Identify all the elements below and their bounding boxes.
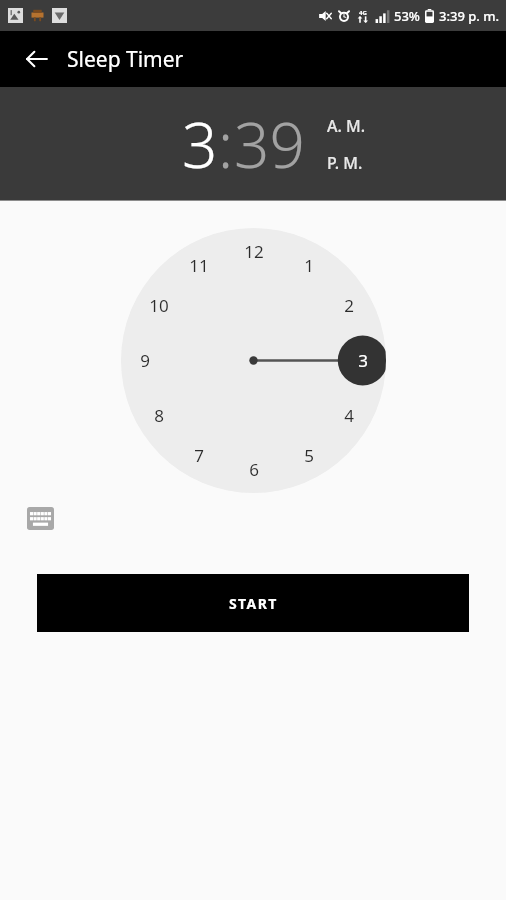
button[interactable]: Switch to text input xyxy=(25,505,55,531)
staticText: 5 xyxy=(304,444,314,467)
button[interactable]: 39 xyxy=(234,102,305,186)
staticText: A. M. xyxy=(327,115,366,137)
staticText: 3 xyxy=(358,349,368,372)
staticText: 4 xyxy=(344,404,354,427)
staticText: 8 xyxy=(154,404,164,427)
staticText: 1 xyxy=(304,254,314,277)
staticText: 53% xyxy=(394,7,420,25)
button[interactable]: Back xyxy=(13,35,61,83)
staticText: 3:39 p. m. xyxy=(439,7,500,25)
staticText: 9 xyxy=(140,349,150,372)
staticText: 7 xyxy=(194,444,204,467)
staticText: START xyxy=(229,594,278,613)
staticText: : xyxy=(218,102,234,186)
button[interactable]: 3 xyxy=(182,102,218,186)
staticText: 10 xyxy=(149,294,169,317)
button[interactable]: START xyxy=(37,574,469,632)
button[interactable]: A. M. xyxy=(325,112,368,140)
staticText: 6 xyxy=(249,458,259,481)
staticText: 11 xyxy=(189,254,209,277)
staticText: 12 xyxy=(244,240,264,263)
staticText: 2 xyxy=(344,294,354,317)
staticText: P. M. xyxy=(327,152,363,174)
staticText: Sleep Timer xyxy=(67,45,184,74)
button[interactable]: Hour picker xyxy=(121,228,386,493)
button[interactable]: P. M. xyxy=(325,149,365,177)
staticText: 4G xyxy=(359,9,367,17)
